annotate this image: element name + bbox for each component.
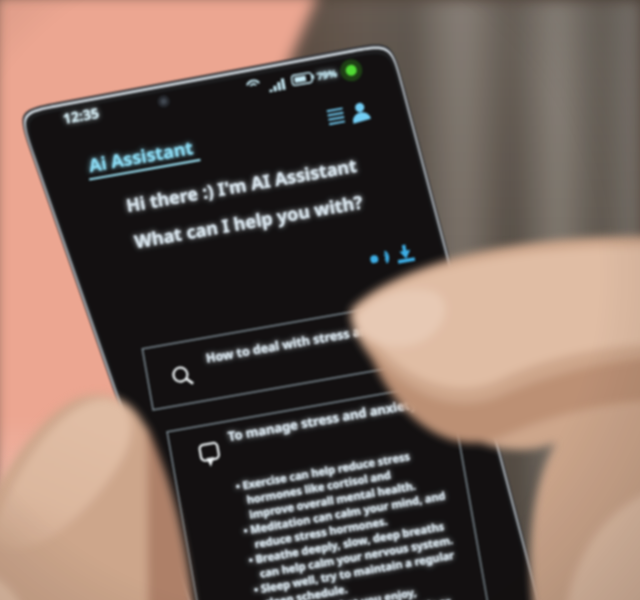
button[interactable]: Search: How to deal with stress and anxi…	[141, 334, 443, 408]
button[interactable]: Read answer aloud	[364, 243, 390, 269]
button[interactable]: Answer: To manage stress and anxiety	[166, 420, 476, 600]
button[interactable]: Save answer	[392, 239, 418, 265]
button[interactable]: Chat history	[322, 104, 350, 132]
button[interactable]: Profile	[348, 103, 376, 131]
